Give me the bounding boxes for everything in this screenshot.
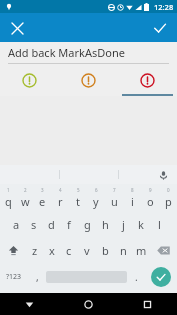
button[interactable]: Shift — [0, 237, 26, 263]
staticText: g — [84, 217, 91, 232]
button[interactable]: 7 — [105, 184, 123, 211]
staticText: 3 — [41, 187, 44, 193]
staticText: 7 — [113, 187, 116, 193]
button[interactable]: Priority — [118, 73, 177, 96]
button[interactable]: a — [8, 211, 25, 237]
button[interactable]: n — [114, 237, 132, 263]
staticText: ?123 — [6, 272, 22, 282]
button[interactable]: Home — [59, 293, 118, 315]
staticText: v — [84, 243, 90, 258]
button[interactable]: k — [132, 211, 150, 237]
button[interactable]: Add back MarkAsDone — [8, 45, 169, 64]
button[interactable]: l — [150, 211, 168, 237]
staticText: t — [76, 194, 80, 209]
button[interactable]: g — [78, 211, 96, 237]
staticText: s — [31, 217, 37, 232]
button[interactable]: Backspace — [150, 237, 177, 263]
button[interactable]: h — [96, 211, 114, 237]
button[interactable]: 3 — [34, 184, 51, 211]
staticText: c — [66, 243, 72, 258]
staticText: x — [49, 243, 55, 258]
button[interactable]: m — [132, 237, 150, 263]
staticText: 6 — [95, 187, 98, 193]
button[interactable]: 9 — [141, 184, 159, 211]
staticText: m — [136, 243, 147, 258]
staticText: h — [102, 217, 109, 232]
button[interactable]: z — [26, 237, 43, 263]
button[interactable]: 2 — [17, 184, 34, 211]
button[interactable]: 0 — [159, 184, 177, 211]
button[interactable]: d — [42, 211, 60, 237]
button[interactable]: f — [60, 211, 78, 237]
button[interactable]: v — [78, 237, 96, 263]
button[interactable]: 1 — [0, 184, 17, 211]
staticText: a — [13, 217, 20, 232]
button[interactable]: ?123 — [0, 263, 28, 291]
button[interactable]: . — [127, 263, 145, 291]
staticText: . — [135, 270, 138, 284]
staticText: o — [147, 194, 154, 209]
staticText: b — [102, 243, 109, 258]
staticText: 5 — [77, 187, 80, 193]
staticText: k — [138, 217, 144, 232]
button[interactable] — [118, 165, 177, 184]
staticText: 9 — [149, 187, 152, 193]
staticText: j — [122, 217, 125, 232]
button[interactable]: Save — [149, 17, 171, 39]
button[interactable]: 8 — [123, 184, 141, 211]
button[interactable]: 5 — [69, 184, 87, 211]
button[interactable]: s — [25, 211, 42, 237]
button[interactable]: Enter — [145, 263, 177, 291]
staticText: n — [120, 243, 127, 258]
button[interactable]: Priority — [0, 73, 59, 96]
staticText: y — [93, 194, 99, 209]
staticText: 4 — [59, 187, 62, 193]
staticText: e — [39, 194, 46, 209]
staticText: 2 — [24, 187, 27, 193]
button[interactable]: , — [28, 263, 46, 291]
staticText: Add back MarkAsDone — [8, 45, 125, 60]
staticText: p — [165, 194, 172, 209]
button[interactable]: Cancel — [6, 17, 28, 39]
button[interactable]: Voice input — [156, 168, 170, 182]
staticText: u — [111, 194, 118, 209]
button[interactable]: 4 — [51, 184, 69, 211]
staticText: r — [58, 194, 63, 209]
staticText: l — [158, 217, 161, 232]
staticText: 1 — [7, 187, 10, 193]
staticText: 8 — [131, 187, 134, 193]
staticText: , — [36, 270, 39, 284]
button[interactable]: b — [96, 237, 114, 263]
button[interactable]: c — [60, 237, 78, 263]
staticText: f — [67, 217, 71, 232]
button[interactable]: j — [114, 211, 132, 237]
staticText: z — [32, 243, 38, 258]
button[interactable]: Back — [0, 293, 59, 315]
staticText: d — [48, 217, 55, 232]
button[interactable]: x — [43, 237, 60, 263]
staticText: i — [131, 194, 134, 209]
staticText: 12:28 — [154, 2, 174, 12]
button[interactable]: 6 — [87, 184, 105, 211]
staticText: 0 — [167, 187, 170, 193]
staticText: q — [5, 194, 12, 209]
button[interactable]: Recent apps — [118, 293, 177, 315]
staticText: w — [21, 194, 30, 209]
button[interactable]: Priority — [59, 73, 118, 96]
